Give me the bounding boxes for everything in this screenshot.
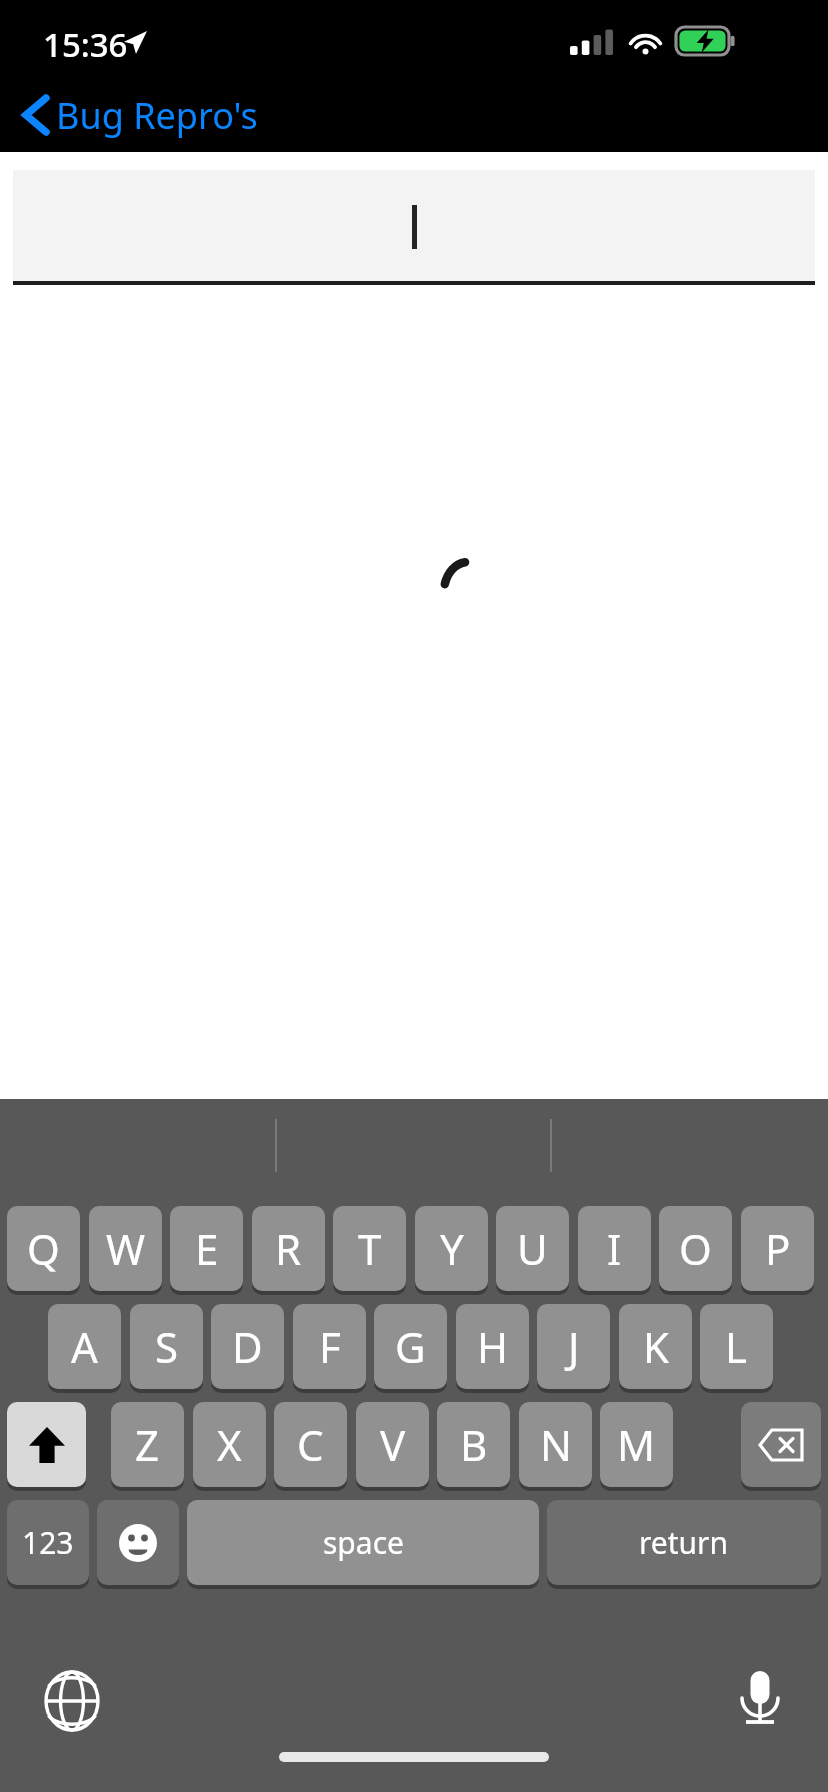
staticText: N bbox=[540, 1416, 572, 1473]
button[interactable]: Dictation bbox=[728, 1669, 792, 1733]
button[interactable]: V bbox=[356, 1402, 429, 1491]
staticText: V bbox=[380, 1416, 406, 1473]
button[interactable]: C bbox=[274, 1402, 347, 1491]
staticText: G bbox=[395, 1318, 426, 1375]
staticText: H bbox=[477, 1318, 509, 1375]
staticText: S bbox=[155, 1318, 179, 1375]
staticText: Q bbox=[27, 1220, 60, 1277]
button[interactable]: K bbox=[619, 1304, 692, 1393]
button[interactable] bbox=[13, 170, 815, 281]
staticText: D bbox=[232, 1318, 263, 1375]
button[interactable]: O bbox=[659, 1206, 732, 1295]
staticText: Y bbox=[440, 1220, 464, 1277]
button[interactable]: J bbox=[537, 1304, 610, 1393]
staticText: A bbox=[71, 1318, 98, 1375]
button[interactable]: Shift bbox=[7, 1402, 86, 1491]
button[interactable]: W bbox=[89, 1206, 162, 1295]
staticText: Bug Repro's bbox=[56, 91, 258, 140]
button[interactable]: T bbox=[333, 1206, 406, 1295]
staticText: I bbox=[607, 1220, 622, 1277]
button[interactable]: Bug Repro's bbox=[16, 86, 258, 144]
button[interactable]: X bbox=[193, 1402, 266, 1491]
button[interactable]: S bbox=[130, 1304, 203, 1393]
staticText: return bbox=[639, 1522, 729, 1563]
button[interactable]: Emoji bbox=[97, 1500, 179, 1589]
button[interactable]: B bbox=[437, 1402, 510, 1491]
staticText: 15:36 bbox=[43, 22, 128, 67]
staticText: K bbox=[643, 1318, 669, 1375]
staticText: F bbox=[319, 1318, 341, 1375]
staticText: J bbox=[568, 1318, 580, 1375]
button[interactable]: R bbox=[252, 1206, 325, 1295]
staticText: Z bbox=[135, 1416, 160, 1473]
staticText: T bbox=[358, 1220, 382, 1277]
button[interactable]: Q bbox=[7, 1206, 80, 1295]
staticText: O bbox=[679, 1220, 712, 1277]
staticText: M bbox=[617, 1416, 656, 1473]
button[interactable]: return bbox=[547, 1500, 821, 1589]
button[interactable]: P bbox=[741, 1206, 814, 1295]
button[interactable]: A bbox=[48, 1304, 121, 1393]
staticText: W bbox=[106, 1220, 146, 1277]
button[interactable]: M bbox=[600, 1402, 673, 1491]
staticText: U bbox=[517, 1220, 548, 1277]
staticText: E bbox=[195, 1220, 219, 1277]
button[interactable]: L bbox=[700, 1304, 773, 1393]
button[interactable]: D bbox=[211, 1304, 284, 1393]
button[interactable]: E bbox=[170, 1206, 243, 1295]
staticText: X bbox=[217, 1416, 242, 1473]
button[interactable]: space bbox=[187, 1500, 539, 1589]
button[interactable]: Backspace bbox=[741, 1402, 821, 1491]
button[interactable]: F bbox=[293, 1304, 366, 1393]
button[interactable]: 123 bbox=[7, 1500, 89, 1589]
button[interactable]: N bbox=[519, 1402, 592, 1491]
staticText: space bbox=[323, 1522, 404, 1563]
staticText: C bbox=[297, 1416, 324, 1473]
button[interactable]: G bbox=[374, 1304, 447, 1393]
staticText: P bbox=[765, 1220, 791, 1277]
staticText: 123 bbox=[22, 1522, 74, 1563]
button[interactable]: Change keyboard bbox=[40, 1669, 104, 1733]
button[interactable]: I bbox=[578, 1206, 651, 1295]
staticText: R bbox=[275, 1220, 302, 1277]
button[interactable]: U bbox=[496, 1206, 569, 1295]
staticText: L bbox=[725, 1318, 748, 1375]
staticText: B bbox=[460, 1416, 488, 1473]
button[interactable]: H bbox=[456, 1304, 529, 1393]
button[interactable]: Z bbox=[111, 1402, 184, 1491]
button[interactable]: Y bbox=[415, 1206, 488, 1295]
